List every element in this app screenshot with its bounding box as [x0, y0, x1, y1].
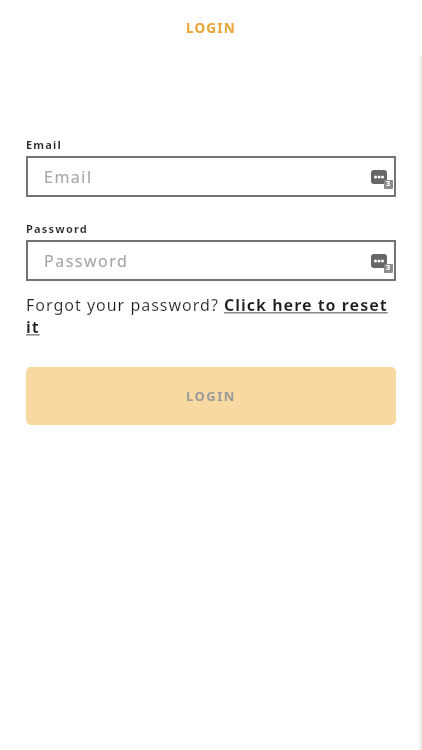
button[interactable]: LOGIN [26, 367, 396, 425]
staticText: 3 [386, 179, 391, 189]
staticText: 3 [386, 263, 391, 273]
staticText: LOGIN [186, 387, 236, 405]
staticText: Password [26, 221, 89, 236]
button[interactable]: Email [26, 156, 396, 197]
staticText: LOGIN [186, 19, 236, 37]
staticText: Email [44, 166, 93, 188]
staticText: Email [26, 137, 63, 152]
button[interactable]: Password [26, 240, 396, 281]
staticText: Password [44, 250, 129, 272]
button[interactable]: Forgot your password? Click here to rese… [26, 294, 396, 338]
